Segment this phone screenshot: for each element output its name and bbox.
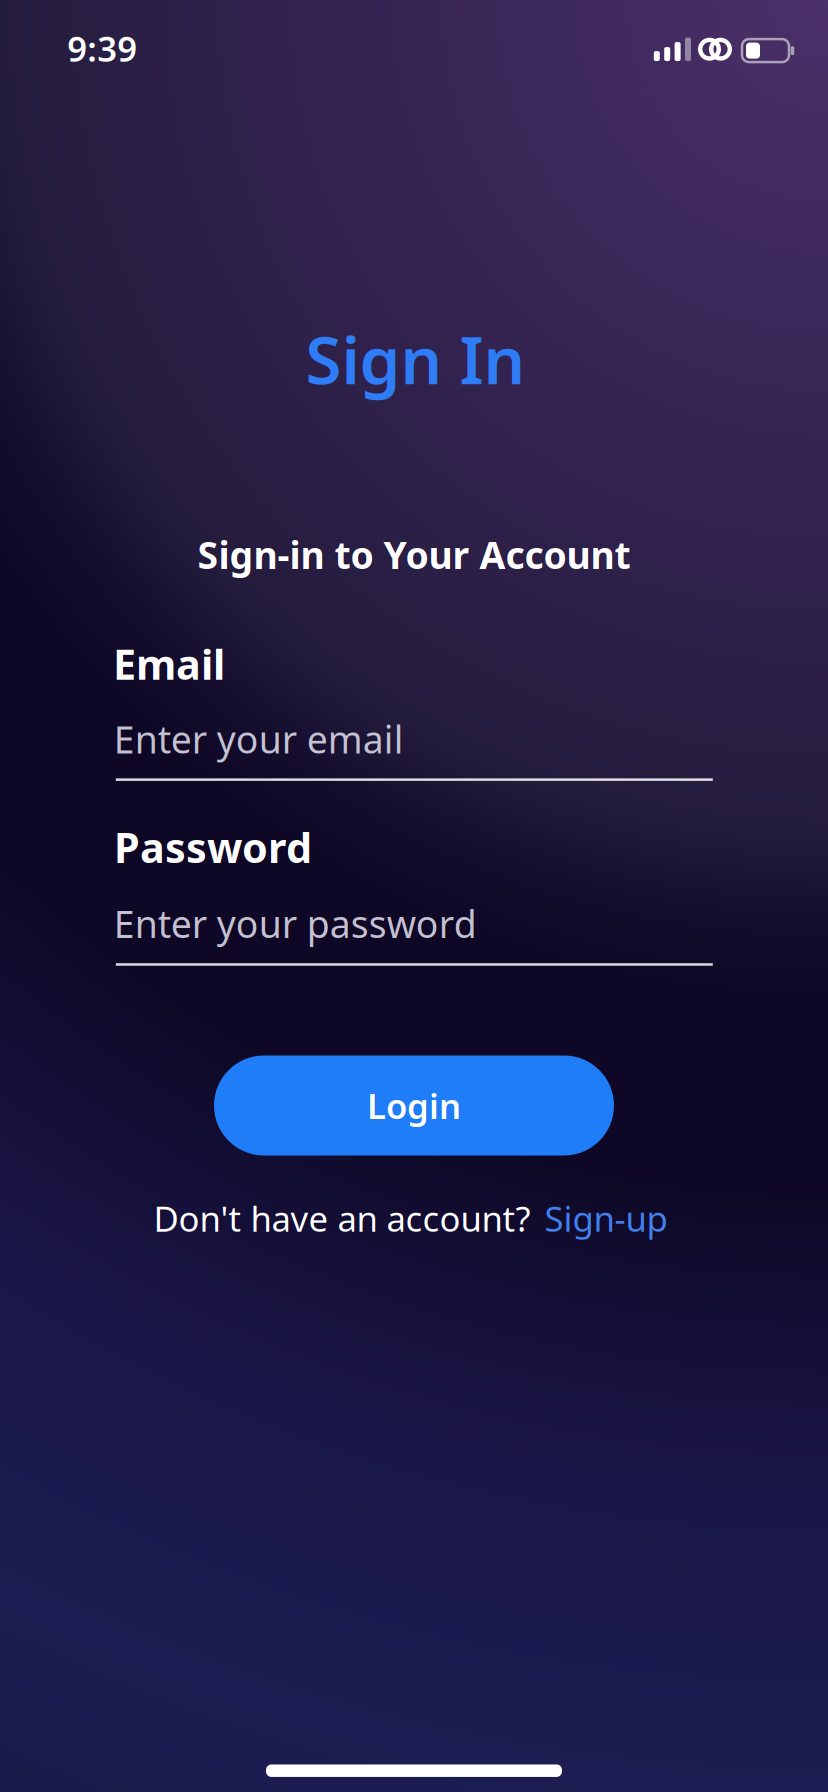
staticText: Enter your email xyxy=(114,714,404,764)
staticText: Enter your password xyxy=(114,899,477,948)
staticText: Sign-up xyxy=(544,1195,667,1241)
button[interactable]: Login xyxy=(214,1055,614,1155)
staticText: 9:39 xyxy=(67,25,137,71)
button[interactable]: Enter your password xyxy=(116,899,713,967)
staticText: Password xyxy=(114,819,312,874)
staticText: Sign In xyxy=(305,315,525,402)
staticText: Don't have an account? xyxy=(153,1195,530,1241)
staticText: Sign-in to Your Account xyxy=(197,530,630,579)
button[interactable]: Sign-up xyxy=(544,1195,667,1241)
staticText: Email xyxy=(113,636,225,691)
button[interactable]: Enter your email xyxy=(116,714,713,782)
staticText: Login xyxy=(367,1082,461,1128)
